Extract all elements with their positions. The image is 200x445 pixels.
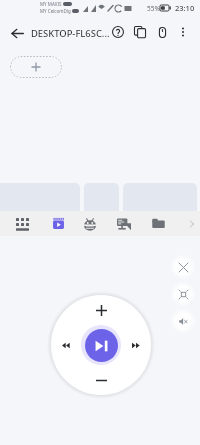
button[interactable]: Switch windows [129,21,151,43]
button[interactable]: Volume up [91,300,111,320]
button[interactable]: Previous [56,335,75,355]
button[interactable]: Add connection [10,56,62,78]
button[interactable]: Help [107,21,129,43]
button[interactable]: Expand [182,211,200,236]
staticText: MY MAXIS [40,1,62,7]
button[interactable]: Close [170,254,196,280]
button[interactable]: Back [5,21,29,45]
button[interactable]: Files [147,211,169,236]
button[interactable]: Android [79,211,101,236]
button[interactable]: Next [126,335,145,355]
staticText: 23:10 [175,3,195,13]
button[interactable]: Play or pause [81,325,121,365]
button[interactable]: Apps [11,211,33,236]
button[interactable]: Mute [170,308,196,334]
staticText: DESKTOP-FL6SC... [31,27,110,40]
staticText: MY CelcomDig [40,8,71,14]
button[interactable]: Fit to screen [170,281,196,307]
staticText: 55% [147,4,160,13]
button[interactable]: Media player [47,211,69,236]
button[interactable]: More options [172,21,194,43]
button[interactable]: Volume down [91,370,111,390]
button[interactable]: Remote display [113,211,135,236]
button[interactable]: Mouse mode [151,21,173,43]
